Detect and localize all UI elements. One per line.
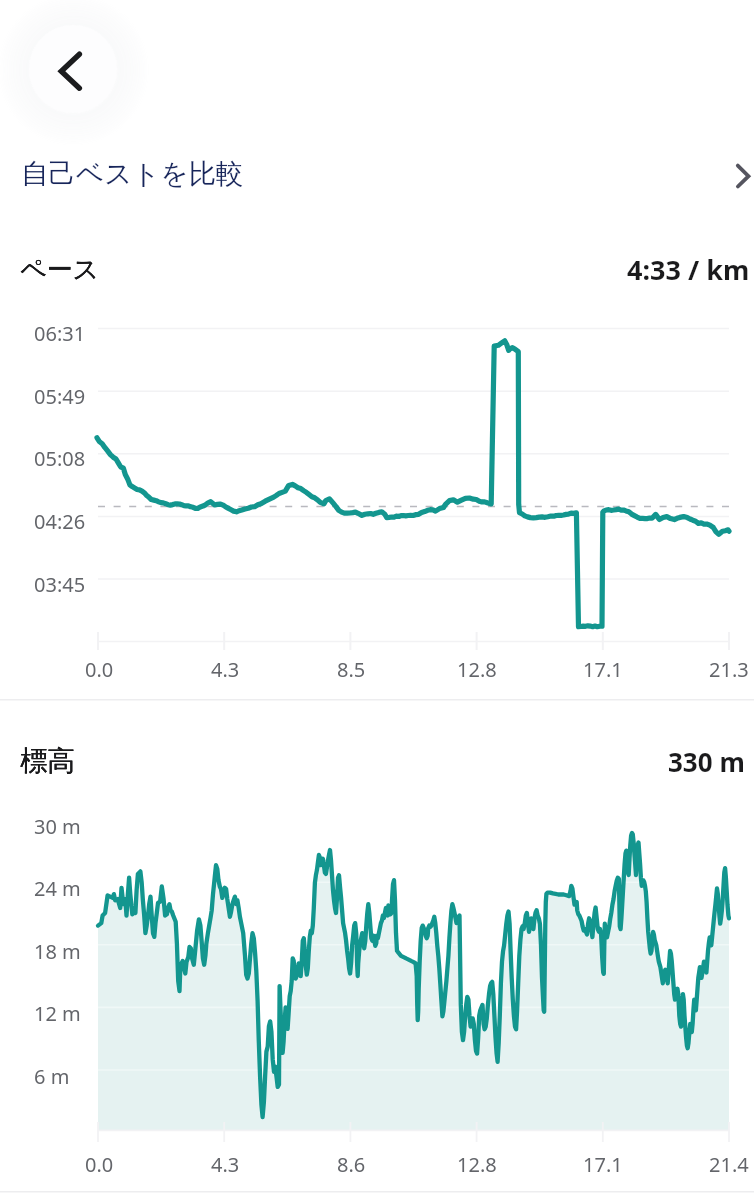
staticText: 30 m [34, 813, 81, 840]
staticText: 05:08 [34, 445, 86, 472]
staticText: ペース [20, 253, 100, 286]
staticText: 標高 [20, 744, 75, 779]
button[interactable]: 自己ベストを比較 [0, 140, 754, 210]
staticText: 17.1 [583, 1151, 623, 1178]
staticText: 標高 [20, 744, 75, 779]
staticText: 6 m [34, 1063, 70, 1090]
staticText: 17.1 [583, 656, 623, 683]
staticText: 4.3 [211, 656, 240, 683]
staticText: 21.3 [709, 656, 749, 683]
staticText: ペース [20, 253, 100, 286]
staticText: ペース [20, 253, 100, 286]
staticText: 8.5 [337, 656, 366, 683]
staticText: 12.8 [457, 656, 497, 683]
staticText: 18 m [34, 938, 81, 965]
staticText: 05:49 [34, 383, 86, 410]
staticText: 自己ベストを比較 [21, 157, 244, 192]
staticText: 24 m [34, 875, 81, 902]
staticText: 21.4 [709, 1151, 749, 1178]
staticText: 0.0 [85, 656, 114, 683]
staticText: ペース [20, 253, 100, 286]
staticText: 標高 [20, 744, 75, 779]
staticText: 06:31 [34, 320, 86, 347]
staticText: 03:45 [34, 571, 86, 598]
staticText: 04:26 [34, 508, 86, 535]
staticText: 330 m [668, 744, 745, 779]
staticText: 8.6 [337, 1151, 366, 1178]
button[interactable]: Back [29, 25, 117, 113]
staticText: 4.3 [211, 1151, 240, 1178]
staticText: 4:33 / km [627, 251, 750, 288]
staticText: 0.0 [85, 1151, 114, 1178]
staticText: 12.8 [457, 1151, 497, 1178]
staticText: 12 m [34, 1000, 81, 1027]
staticText: 標高 [20, 744, 75, 779]
